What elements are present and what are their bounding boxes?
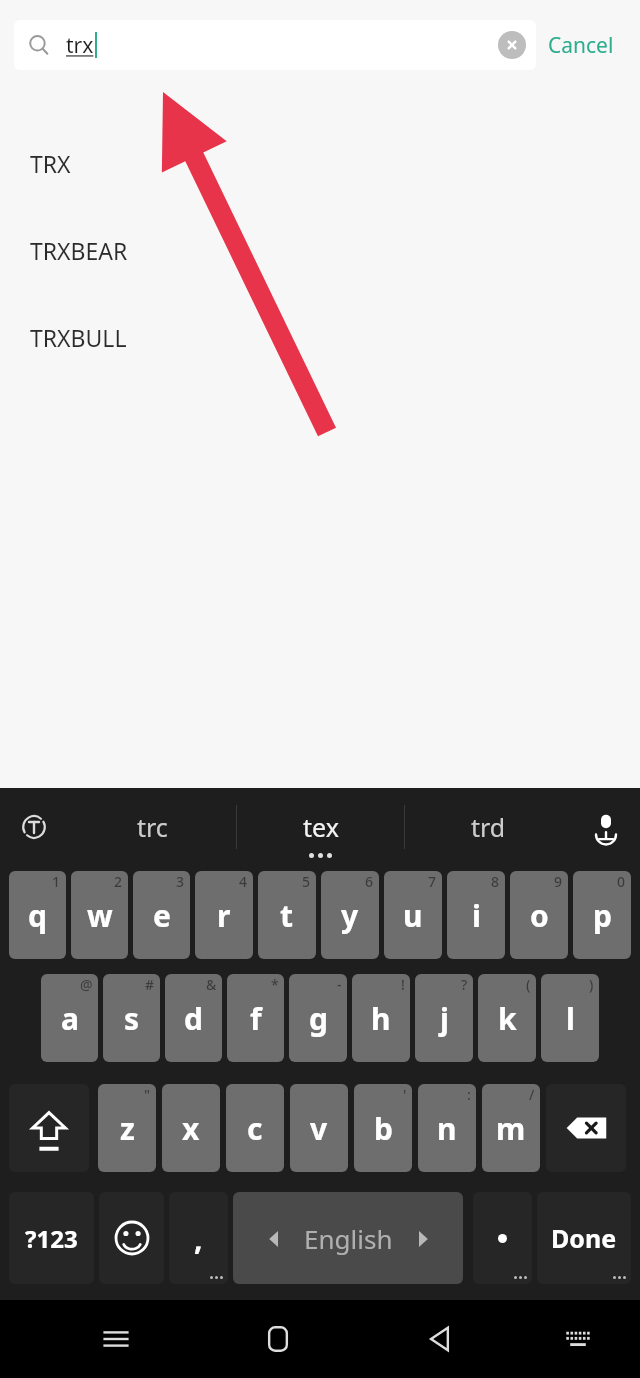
staticText: 6	[365, 872, 374, 891]
staticText: v	[310, 1108, 328, 1149]
button[interactable]: t	[258, 871, 316, 959]
button[interactable]: k	[478, 974, 536, 1062]
button[interactable]: TRX	[0, 120, 640, 207]
button[interactable]: Recents	[84, 1307, 148, 1371]
button[interactable]: v	[290, 1084, 348, 1172]
staticText: 5	[302, 872, 311, 891]
staticText: e	[153, 895, 171, 936]
staticText: t	[280, 895, 294, 936]
staticText: :	[467, 1085, 471, 1104]
staticText: (	[526, 975, 531, 994]
button[interactable]: trd	[405, 788, 572, 866]
button[interactable]: Home	[246, 1307, 310, 1371]
staticText: j	[440, 998, 449, 1039]
staticText: Done	[551, 1221, 617, 1255]
button[interactable]: TRXBEAR	[0, 207, 640, 294]
button[interactable]: e	[133, 871, 190, 959]
button[interactable]: key	[546, 1084, 626, 1172]
staticText: z	[120, 1108, 135, 1149]
button[interactable]: p	[573, 871, 631, 959]
staticText: x	[182, 1108, 200, 1149]
button[interactable]: key	[99, 1192, 164, 1284]
button[interactable]: Back	[408, 1307, 472, 1371]
staticText: tex	[303, 810, 339, 844]
staticText: *	[271, 975, 279, 994]
button[interactable]: Hide keyboard	[550, 1311, 606, 1367]
button[interactable]: c	[226, 1084, 284, 1172]
button[interactable]: z	[98, 1084, 156, 1172]
staticText: i	[472, 895, 481, 936]
staticText: '	[403, 1085, 407, 1104]
button[interactable]: f	[227, 974, 284, 1062]
staticText: 4	[239, 872, 248, 891]
button[interactable]: trc	[68, 788, 236, 866]
staticText: 1	[52, 872, 61, 891]
button[interactable]: Voice input	[572, 788, 640, 866]
staticText: g	[309, 998, 328, 1039]
staticText: h	[371, 998, 391, 1039]
staticText: a	[61, 998, 79, 1039]
button[interactable]: l	[541, 974, 599, 1062]
button[interactable]: ,	[169, 1192, 228, 1284]
staticText: 0	[617, 872, 626, 891]
staticText: r	[217, 895, 231, 936]
staticText: d	[184, 998, 203, 1039]
button[interactable]: Cancel	[536, 23, 626, 68]
button[interactable]: x	[162, 1084, 220, 1172]
staticText: ?	[461, 975, 468, 994]
staticText: 9	[554, 872, 563, 891]
button[interactable]: w	[71, 871, 128, 959]
button[interactable]: key	[473, 1192, 532, 1284]
staticText: l	[566, 998, 575, 1039]
button[interactable]: y	[321, 871, 379, 959]
staticText: "	[144, 1085, 151, 1104]
staticText: 7	[428, 872, 437, 891]
button[interactable]: i	[447, 871, 505, 959]
button[interactable]: b	[354, 1084, 412, 1172]
staticText: p	[593, 895, 612, 936]
staticText: w	[87, 895, 113, 936]
button[interactable]: TRXBULL	[0, 294, 640, 381]
staticText: k	[498, 998, 517, 1039]
button[interactable]: Done	[537, 1192, 631, 1284]
button[interactable]: h	[352, 974, 410, 1062]
button[interactable]: j	[415, 974, 473, 1062]
button[interactable]: key	[233, 1192, 463, 1284]
staticText: f	[250, 998, 262, 1039]
staticText: !	[401, 975, 405, 994]
staticText: Cancel	[548, 31, 614, 60]
button[interactable]: g	[289, 974, 347, 1062]
staticText: n	[437, 1108, 457, 1149]
button[interactable]: key	[9, 1084, 89, 1172]
staticText: s	[124, 998, 140, 1039]
staticText: /	[529, 1085, 535, 1104]
staticText: #	[145, 975, 155, 994]
staticText: )	[589, 975, 594, 994]
button[interactable]: Clear	[498, 31, 526, 59]
staticText: m	[496, 1108, 526, 1149]
button[interactable]: m	[482, 1084, 540, 1172]
staticText: c	[247, 1108, 263, 1149]
staticText: @	[80, 975, 93, 994]
button[interactable]: u	[384, 871, 442, 959]
staticText: TRXBULL	[30, 322, 127, 353]
staticText: 3	[176, 872, 185, 891]
button[interactable]: Translate	[0, 788, 68, 866]
button[interactable]: ?123	[9, 1192, 94, 1284]
button[interactable]: trx	[14, 20, 536, 70]
staticText: y	[341, 895, 359, 936]
staticText: u	[403, 895, 423, 936]
button[interactable]: r	[195, 871, 253, 959]
button[interactable]: n	[418, 1084, 476, 1172]
staticText: English	[304, 1221, 393, 1256]
button[interactable]: d	[165, 974, 222, 1062]
button[interactable]: s	[103, 974, 160, 1062]
button[interactable]: a	[41, 974, 98, 1062]
button[interactable]: o	[510, 871, 568, 959]
staticText: 8	[491, 872, 500, 891]
button[interactable]: q	[9, 871, 66, 959]
button[interactable]: tex	[237, 788, 404, 866]
staticText: q	[28, 895, 47, 936]
staticText: trc	[137, 810, 168, 844]
staticText: o	[530, 895, 549, 936]
